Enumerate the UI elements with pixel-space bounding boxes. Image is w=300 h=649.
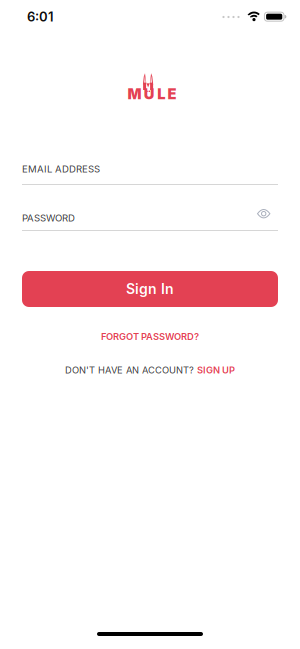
staticText: EMAIL ADDRESS [22, 163, 100, 175]
staticText: DON'T HAVE AN ACCOUNT? [65, 364, 194, 376]
button[interactable]: FORGOT PASSWORD? [101, 331, 199, 342]
button[interactable]: EMAIL ADDRESS [22, 157, 278, 187]
staticText: PASSWORD [22, 212, 75, 224]
staticText: L [157, 85, 165, 103]
button[interactable]: PASSWORD [22, 202, 278, 232]
staticText: 6:01 [27, 9, 54, 25]
staticText: SIGN UP [197, 364, 235, 376]
staticText: FORGOT PASSWORD? [101, 331, 199, 342]
staticText: U [144, 85, 155, 103]
button[interactable]: DON'T HAVE AN ACCOUNT? [65, 364, 235, 376]
staticText: M [127, 85, 141, 103]
staticText: Sign In [126, 280, 174, 297]
staticText: E [168, 85, 177, 103]
button[interactable]: Sign In [22, 271, 278, 307]
button[interactable] [257, 209, 271, 219]
